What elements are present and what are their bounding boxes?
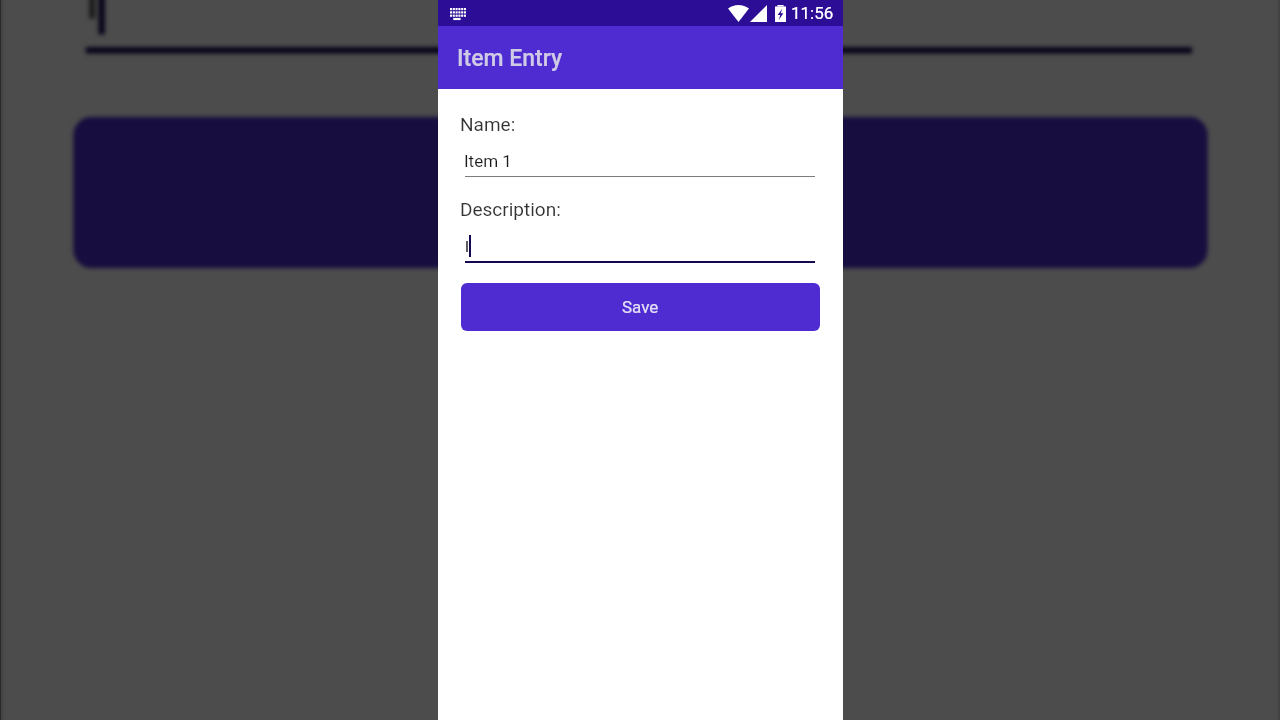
other: Input method [450,8,466,18]
staticText: 11:56 [791,3,834,23]
button[interactable] [86,0,1192,53]
staticText: Name: [460,113,516,135]
staticText: Save [582,161,699,224]
button[interactable]: Save [461,283,820,331]
staticText: Item 1 [464,151,512,171]
button[interactable]: Save [73,117,1208,268]
staticText: Save [622,297,659,317]
button[interactable] [465,227,815,263]
staticText: Description: [460,198,561,220]
staticText: Item Entry [457,45,563,72]
button[interactable]: Item 1 [465,141,815,177]
